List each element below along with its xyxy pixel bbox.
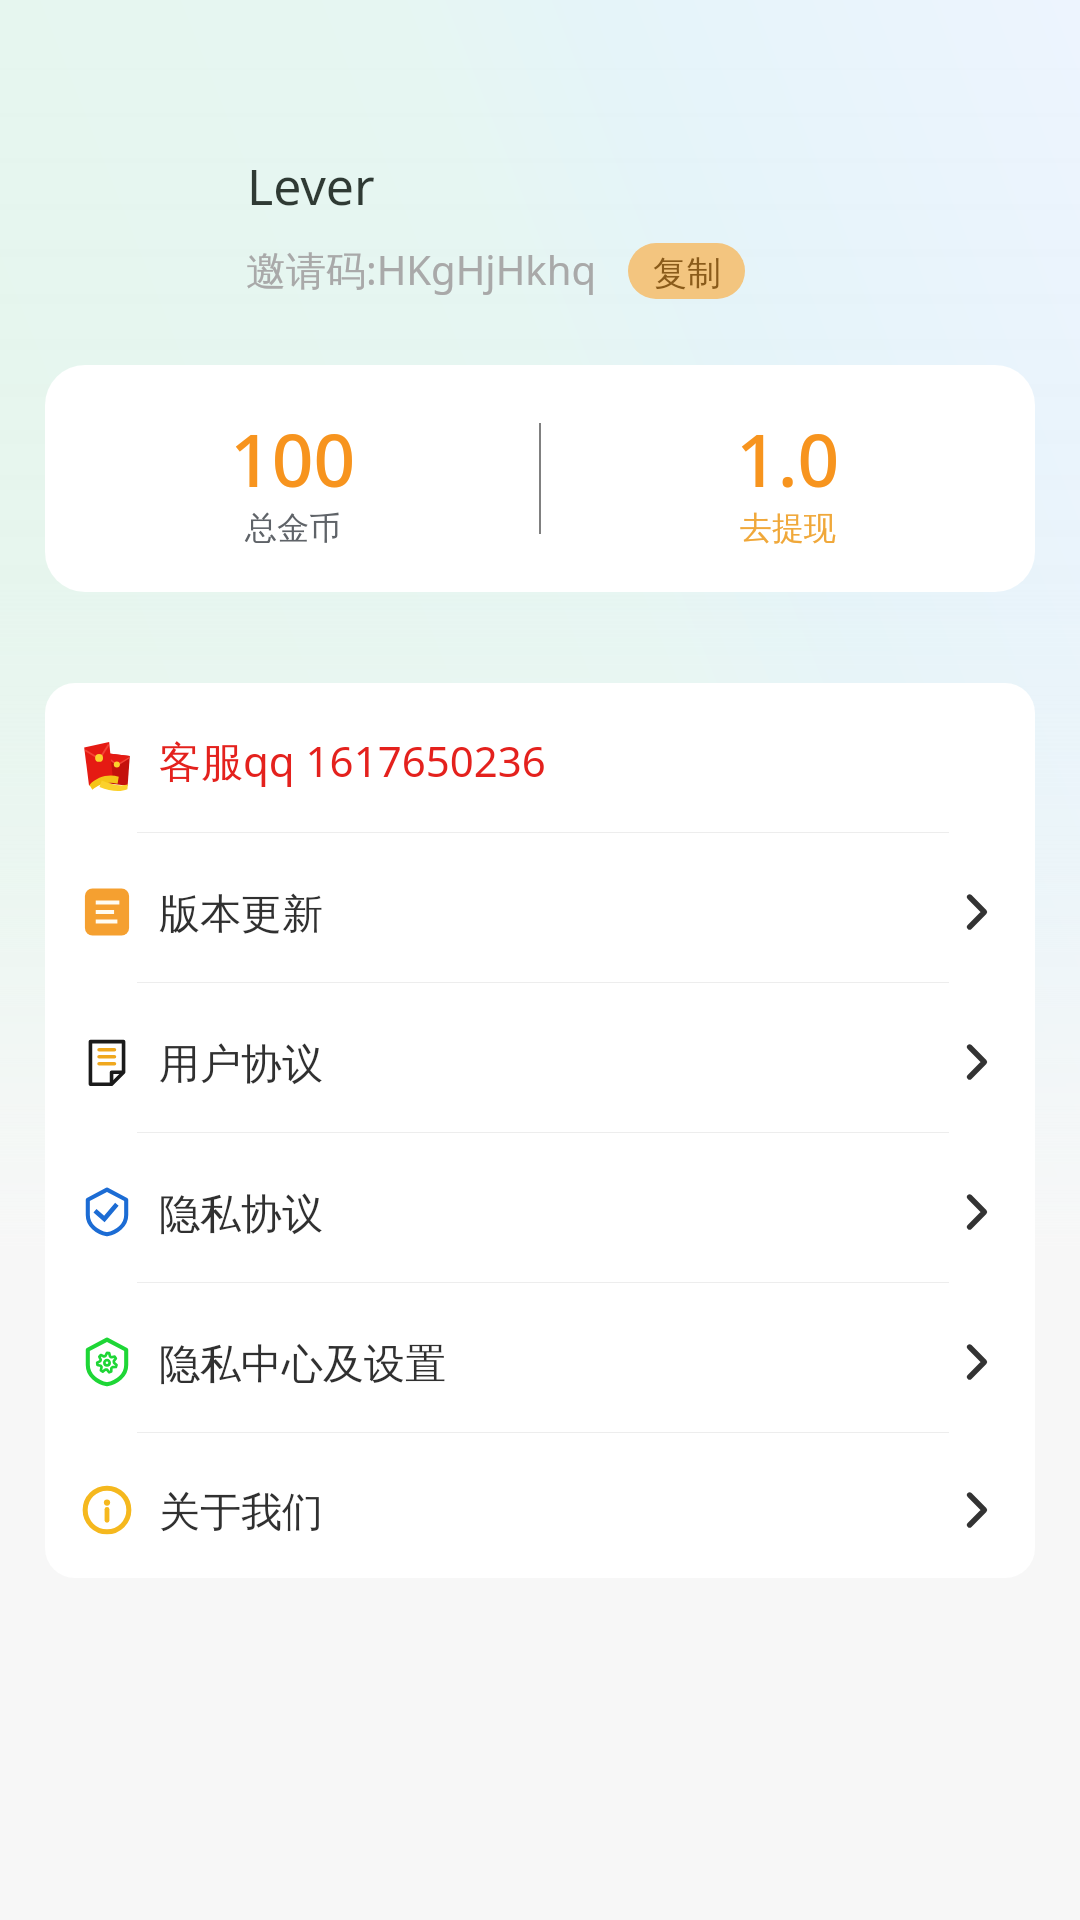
staticText: 100	[230, 409, 356, 508]
button[interactable]: 隐私中心及设置	[45, 1283, 1035, 1432]
staticText: 版本更新	[159, 889, 323, 941]
button[interactable]: 复制邀请码	[628, 243, 745, 299]
staticText: 隐私中心及设置	[159, 1339, 446, 1391]
staticText: 邀请码:HKgHjHkhq	[246, 242, 596, 297]
staticText: Lever	[247, 152, 375, 220]
staticText: 复制	[653, 252, 721, 295]
button[interactable]: 1.0	[540, 365, 1035, 592]
button[interactable]: 隐私协议	[45, 1133, 1035, 1282]
button[interactable]: 版本更新	[45, 833, 1035, 982]
staticText: 1.0	[736, 409, 840, 508]
button[interactable]: 用户协议	[45, 983, 1035, 1132]
staticText: 关于我们	[159, 1487, 323, 1539]
button[interactable]: 100	[45, 365, 540, 592]
staticText: 总金币	[245, 508, 341, 548]
staticText: 去提现	[740, 508, 836, 548]
staticText: 用户协议	[159, 1039, 323, 1091]
staticText: 客服qq 1617650236	[159, 732, 546, 789]
staticText: 隐私协议	[159, 1189, 323, 1241]
button[interactable]: 客服qq 1617650236	[45, 683, 1035, 832]
button[interactable]: 关于我们	[45, 1433, 1035, 1578]
